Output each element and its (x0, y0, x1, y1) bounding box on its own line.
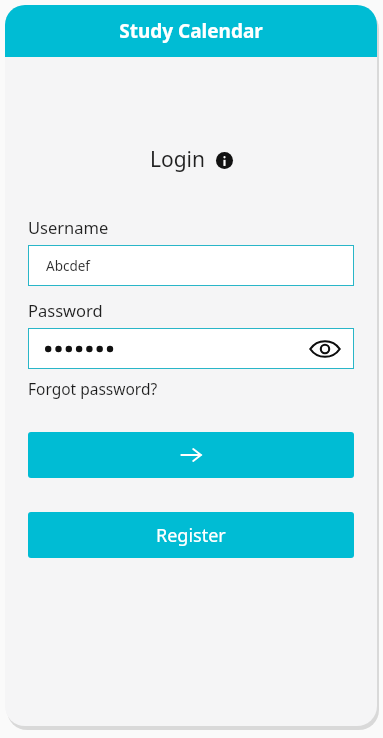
button[interactable]: Information (215, 151, 233, 169)
staticText: Username (28, 216, 109, 238)
staticText: Password (28, 299, 103, 321)
staticText: Study Calendar (119, 18, 263, 44)
button[interactable]: Show password (306, 334, 344, 364)
button[interactable]: Sign in (28, 432, 354, 478)
button[interactable]: Abcdef (28, 245, 354, 286)
button[interactable]: Show password (28, 328, 354, 369)
staticText: Register (156, 523, 226, 548)
button[interactable]: Forgot password? (28, 378, 158, 399)
staticText: Login (150, 145, 206, 174)
staticText: Abcdef (46, 257, 90, 275)
button[interactable]: Register (28, 512, 354, 558)
